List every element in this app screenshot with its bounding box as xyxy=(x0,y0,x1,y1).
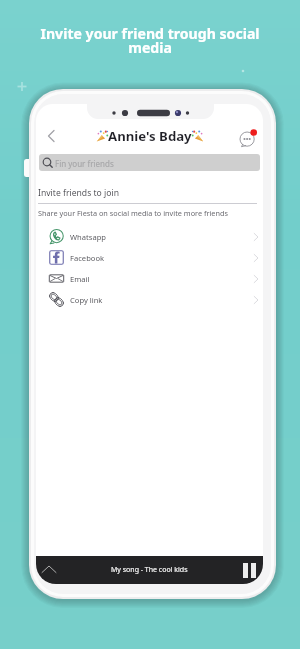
button[interactable]: Pause xyxy=(243,563,256,578)
staticText: Facebook xyxy=(70,253,105,263)
staticText: Invite your friend trough social media xyxy=(34,24,266,57)
staticText: Copy link xyxy=(70,295,103,305)
button[interactable]: Fin your friends xyxy=(39,154,260,171)
staticText: My song - The cool kids xyxy=(111,565,188,575)
staticText: Invite friends to join xyxy=(38,187,119,199)
button[interactable]: My song - The cool kids xyxy=(36,556,263,584)
button[interactable]: Whatsapp xyxy=(36,226,263,247)
button[interactable]: Copy link xyxy=(36,289,263,310)
staticText: Share your Fiesta on social media to inv… xyxy=(38,208,228,218)
staticText: Email xyxy=(70,274,90,284)
button[interactable]: Email xyxy=(36,268,263,289)
button[interactable]: Back xyxy=(39,124,63,148)
button[interactable]: Facebook xyxy=(36,247,263,268)
staticText: Annie's Bday xyxy=(108,127,192,145)
button[interactable]: Expand player xyxy=(40,561,58,579)
staticText: Whatsapp xyxy=(70,232,106,242)
button[interactable]: Messages xyxy=(238,127,258,147)
staticText: Fin your friends xyxy=(55,158,114,169)
